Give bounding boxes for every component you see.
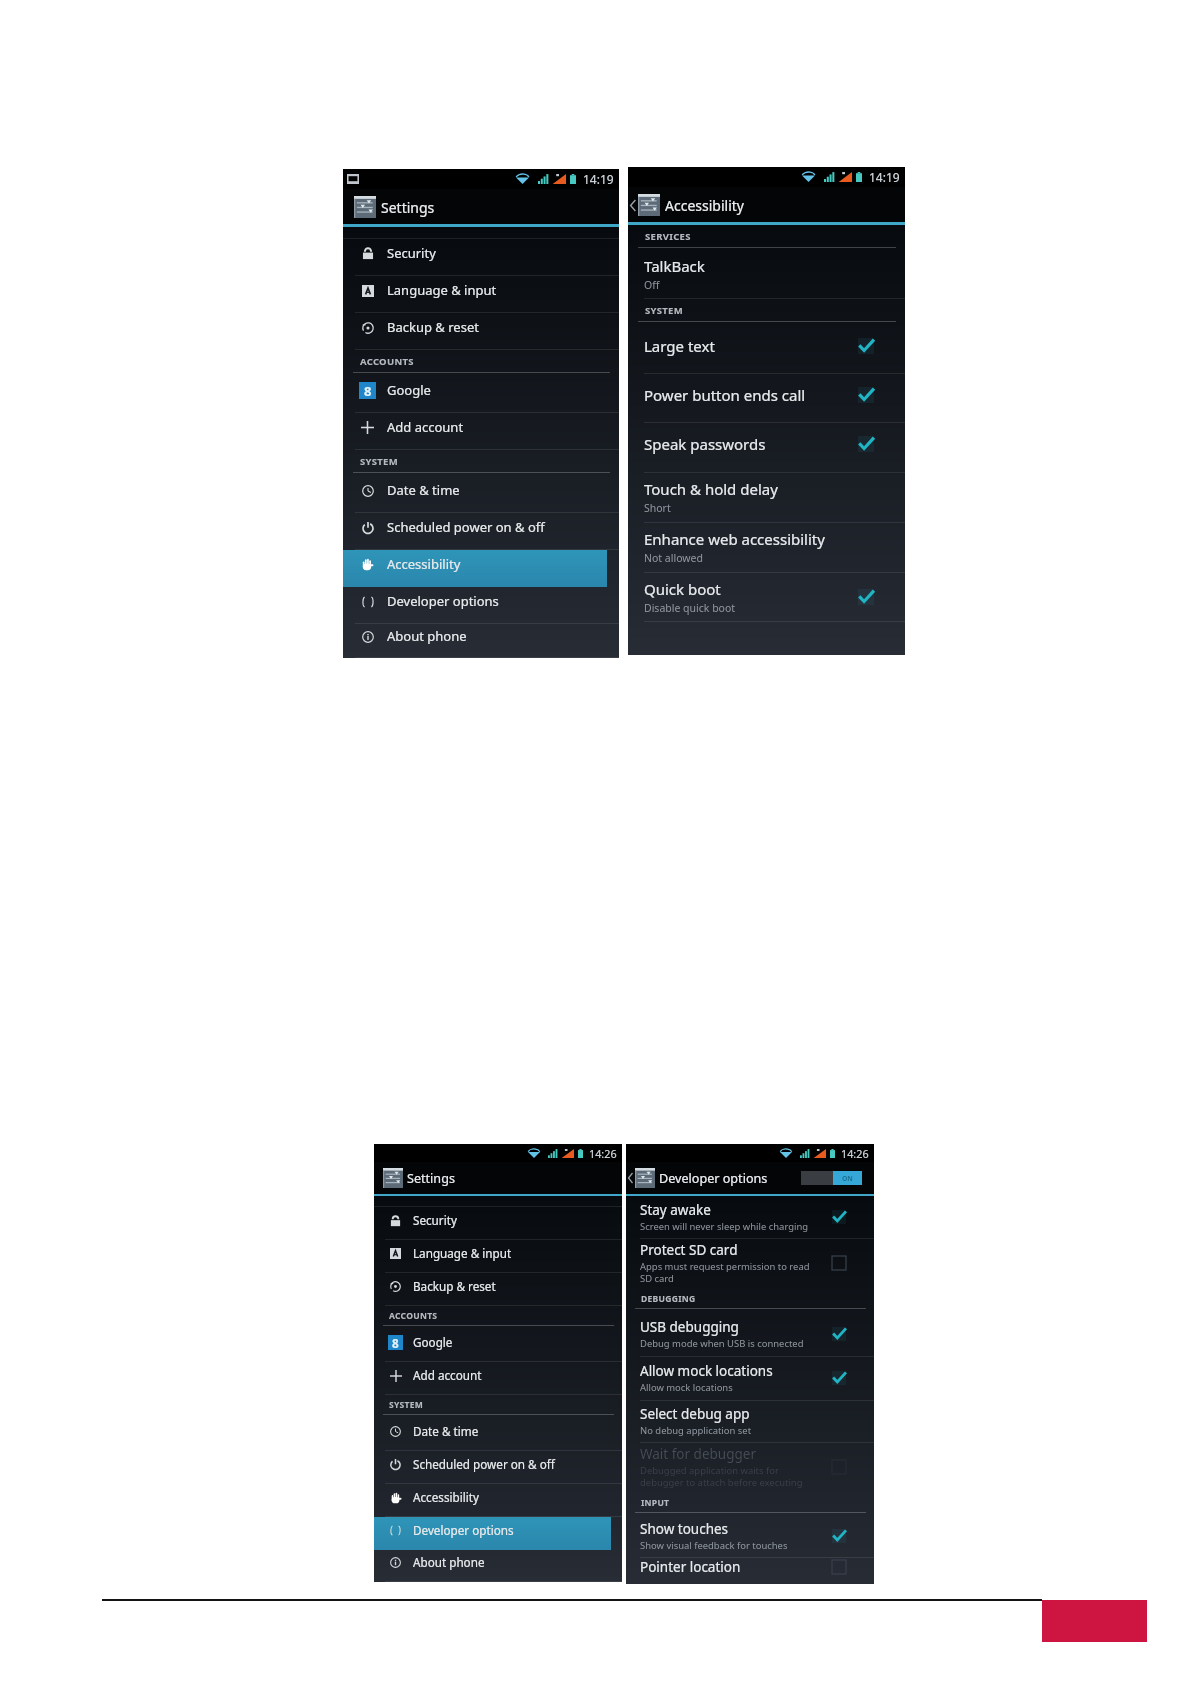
- staticText: Date & time: [387, 481, 460, 499]
- staticText: Allow mock locations: [640, 1362, 773, 1380]
- staticText: 8: [364, 382, 372, 399]
- button[interactable]: Accessibility: [374, 1484, 622, 1517]
- button[interactable]: 8: [343, 376, 619, 413]
- button[interactable]: Language & input: [343, 276, 619, 313]
- staticText: ACCOUNTS: [360, 355, 414, 368]
- staticText: Disable quick boot: [644, 601, 736, 615]
- button[interactable]: Toggle developer options: [801, 1171, 862, 1185]
- button[interactable]: Wait for debugger: [626, 1443, 874, 1493]
- staticText: USB debugging: [640, 1318, 739, 1336]
- staticText: Protect SD card: [640, 1241, 738, 1259]
- staticText: Stay awake: [640, 1201, 711, 1219]
- staticText: Language & input: [413, 1245, 512, 1261]
- staticText: SYSTEM: [389, 1399, 424, 1411]
- staticText: About phone: [413, 1554, 485, 1570]
- button[interactable]: Developer options: [374, 1517, 622, 1550]
- staticText: DEBUGGING: [641, 1293, 696, 1305]
- button[interactable]: USB debugging: [626, 1312, 874, 1357]
- staticText: SERVICES: [645, 230, 691, 243]
- button[interactable]: Developer options: [343, 587, 619, 624]
- staticText: Quick boot: [644, 579, 721, 599]
- button[interactable]: Navigate up: [628, 194, 637, 216]
- button[interactable]: Language & input: [374, 1240, 622, 1273]
- staticText: 14:26: [841, 1146, 869, 1161]
- staticText: SYSTEM: [360, 455, 398, 468]
- staticText: Security: [387, 244, 436, 262]
- staticText: ACCOUNTS: [389, 1310, 438, 1322]
- staticText: Debugged application waits for debugger …: [640, 1464, 823, 1489]
- button[interactable]: Touch & hold delay: [628, 473, 905, 523]
- staticText: Security: [413, 1212, 457, 1228]
- button[interactable]: Security: [343, 239, 619, 276]
- button[interactable]: Add account: [343, 413, 619, 450]
- staticText: Screen will never sleep while charging: [640, 1220, 809, 1233]
- staticText: Show touches: [640, 1520, 729, 1538]
- staticText: Power button ends call: [644, 385, 806, 405]
- staticText: Select debug app: [640, 1405, 750, 1423]
- button[interactable]: Allow mock locations: [626, 1357, 874, 1401]
- staticText: Allow mock locations: [640, 1381, 733, 1394]
- button[interactable]: About phone: [343, 624, 619, 658]
- button[interactable]: TalkBack: [628, 251, 905, 299]
- button[interactable]: Scheduled power on & off: [374, 1451, 622, 1484]
- staticText: Accessibility: [665, 196, 744, 215]
- staticText: Accessibility: [413, 1489, 479, 1505]
- button[interactable]: Power button ends call: [628, 374, 905, 423]
- staticText: Add account: [387, 418, 464, 436]
- staticText: 14:19: [869, 169, 900, 185]
- staticText: SYSTEM: [645, 304, 683, 317]
- staticText: Settings: [381, 198, 435, 217]
- staticText: Add account: [413, 1367, 482, 1383]
- button[interactable]: Large text: [628, 325, 905, 374]
- staticText: Backup & reset: [413, 1278, 496, 1294]
- staticText: Accessibility: [387, 555, 461, 573]
- staticText: Developer options: [413, 1522, 514, 1538]
- staticText: Wait for debugger: [640, 1445, 756, 1463]
- button[interactable]: Navigate up: [626, 1168, 634, 1188]
- staticText: Developer options: [387, 592, 499, 610]
- staticText: Settings: [407, 1170, 455, 1187]
- staticText: Touch & hold delay: [644, 479, 778, 499]
- staticText: ON: [842, 1174, 853, 1183]
- staticText: Google: [413, 1334, 453, 1350]
- staticText: Scheduled power on & off: [387, 518, 545, 536]
- button[interactable]: Backup & reset: [374, 1273, 622, 1306]
- staticText: 8: [392, 1335, 399, 1350]
- staticText: 14:26: [589, 1146, 617, 1161]
- staticText: 14:19: [583, 171, 614, 187]
- button[interactable]: Scheduled power on & off: [343, 513, 619, 550]
- button[interactable]: Date & time: [343, 476, 619, 513]
- button[interactable]: Backup & reset: [343, 313, 619, 350]
- staticText: Backup & reset: [387, 318, 479, 336]
- button[interactable]: Pointer location: [626, 1558, 874, 1584]
- button[interactable]: Enhance web accessibility: [628, 523, 905, 573]
- staticText: Large text: [644, 336, 715, 356]
- button[interactable]: Show touches: [626, 1516, 874, 1558]
- button[interactable]: Quick boot: [628, 573, 905, 622]
- staticText: INPUT: [641, 1497, 670, 1509]
- button[interactable]: Date & time: [374, 1418, 622, 1451]
- staticText: Pointer location: [640, 1558, 741, 1576]
- button[interactable]: Add account: [374, 1362, 622, 1395]
- staticText: Language & input: [387, 281, 497, 299]
- button[interactable]: Select debug app: [626, 1401, 874, 1443]
- staticText: Not allowed: [644, 551, 703, 565]
- staticText: About phone: [387, 627, 467, 645]
- staticText: Debug mode when USB is connected: [640, 1337, 804, 1350]
- button[interactable]: 8: [374, 1329, 622, 1362]
- staticText: Short: [644, 501, 671, 515]
- staticText: Google: [387, 381, 431, 399]
- staticText: Date & time: [413, 1423, 479, 1439]
- staticText: Speak passwords: [644, 434, 766, 454]
- button[interactable]: Security: [374, 1207, 622, 1240]
- staticText: Show visual feedback for touches: [640, 1539, 788, 1552]
- staticText: Scheduled power on & off: [413, 1456, 555, 1472]
- button[interactable]: Speak passwords: [628, 423, 905, 473]
- staticText: No debug application set: [640, 1424, 752, 1437]
- button[interactable]: Accessibility: [343, 550, 619, 587]
- staticText: Developer options: [659, 1170, 768, 1187]
- button[interactable]: Stay awake: [626, 1196, 874, 1239]
- button[interactable]: About phone: [374, 1550, 622, 1582]
- button[interactable]: Protect SD card: [626, 1239, 874, 1289]
- staticText: Enhance web accessibility: [644, 529, 825, 549]
